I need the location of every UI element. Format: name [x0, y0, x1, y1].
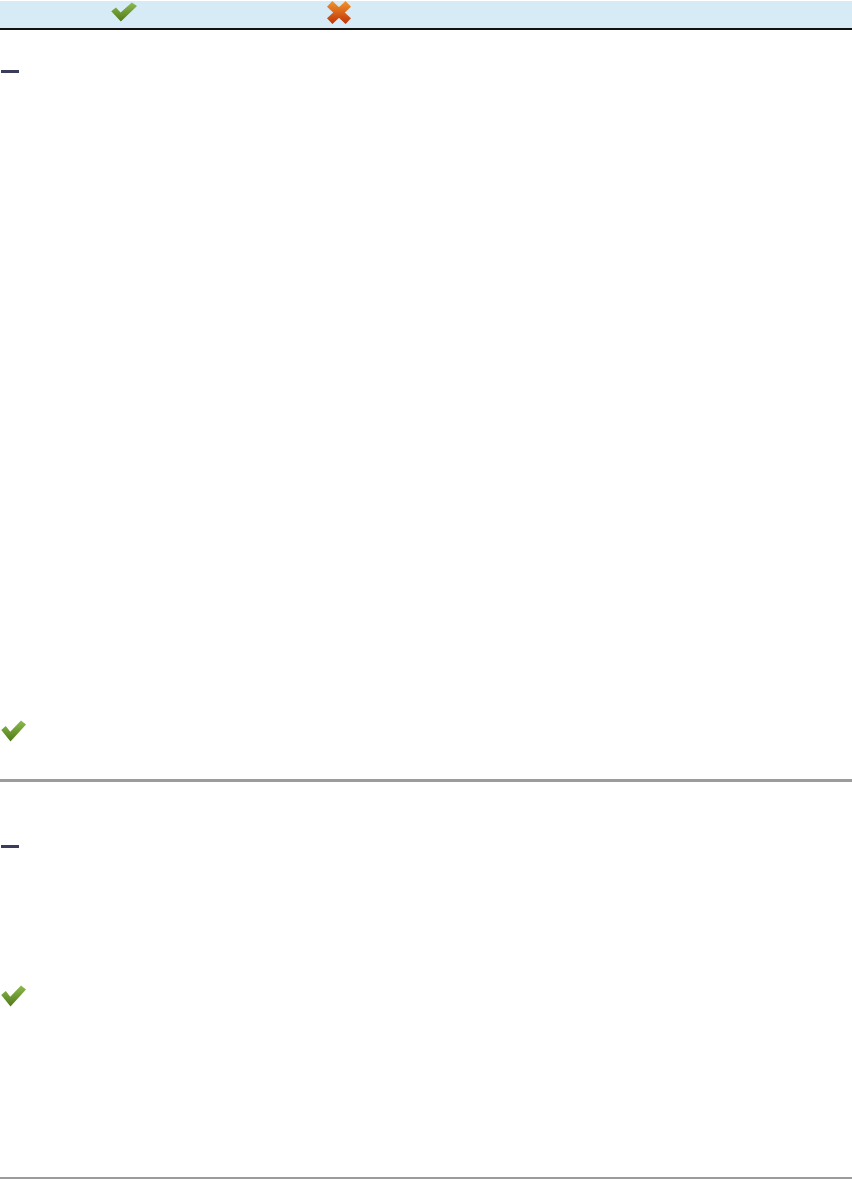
button[interactable]: Not supported — [328, 2, 350, 23]
button[interactable]: Supported — [111, 2, 137, 22]
button[interactable]: Supported — [1, 720, 26, 742]
button[interactable]: Supported — [1, 985, 26, 1007]
